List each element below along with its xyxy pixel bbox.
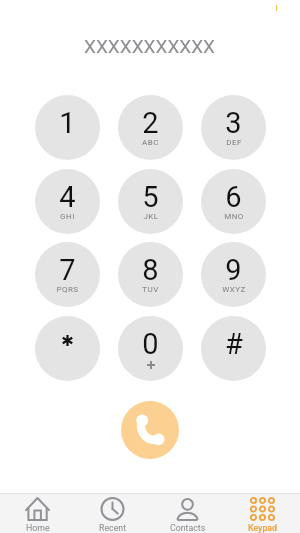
staticText: 4 [59,180,76,214]
button[interactable]: Keypad [225,494,300,533]
staticText: Contacts [170,523,206,533]
button[interactable]: 5 [118,169,183,234]
button[interactable]: 3 [201,95,266,160]
staticText: 3 [225,106,242,140]
button[interactable]: # [201,316,266,381]
button[interactable]: 1 [35,95,100,160]
staticText: 6 [225,180,242,214]
button[interactable]: 0 [118,316,183,381]
button[interactable]: Call [121,401,179,459]
button[interactable]: 7 [35,242,100,307]
button[interactable]: Home [0,494,75,533]
button[interactable]: 2 [118,95,183,160]
staticText: ABC [142,138,159,147]
staticText: 2 [142,106,159,140]
staticText: 5 [142,180,159,214]
staticText: TUV [142,285,159,294]
staticText: Home [26,523,50,533]
staticText: XXXXXXXXXXX [84,35,216,57]
staticText: 1 [59,106,76,140]
button[interactable]: 4 [35,169,100,234]
staticText: 8 [142,253,159,287]
button[interactable]: Contacts [150,494,225,533]
staticText: DEF [226,138,242,147]
staticText: MNO [224,212,244,221]
staticText: JKL [143,212,159,221]
staticText: GHI [60,212,75,221]
button[interactable]: 8 [118,242,183,307]
staticText: WXYZ [222,285,246,294]
button[interactable]: 6 [201,169,266,234]
staticText: 9 [225,253,242,287]
button[interactable]: 9 [201,242,266,307]
button[interactable]: Recent [75,494,150,533]
staticText: 0 [142,327,159,361]
staticText: PQRS [56,285,79,294]
staticText: Recent [99,523,127,533]
staticText: 7 [59,253,76,287]
button[interactable] [35,316,100,381]
staticText: # [225,327,243,361]
staticText: Keypad [248,523,278,533]
